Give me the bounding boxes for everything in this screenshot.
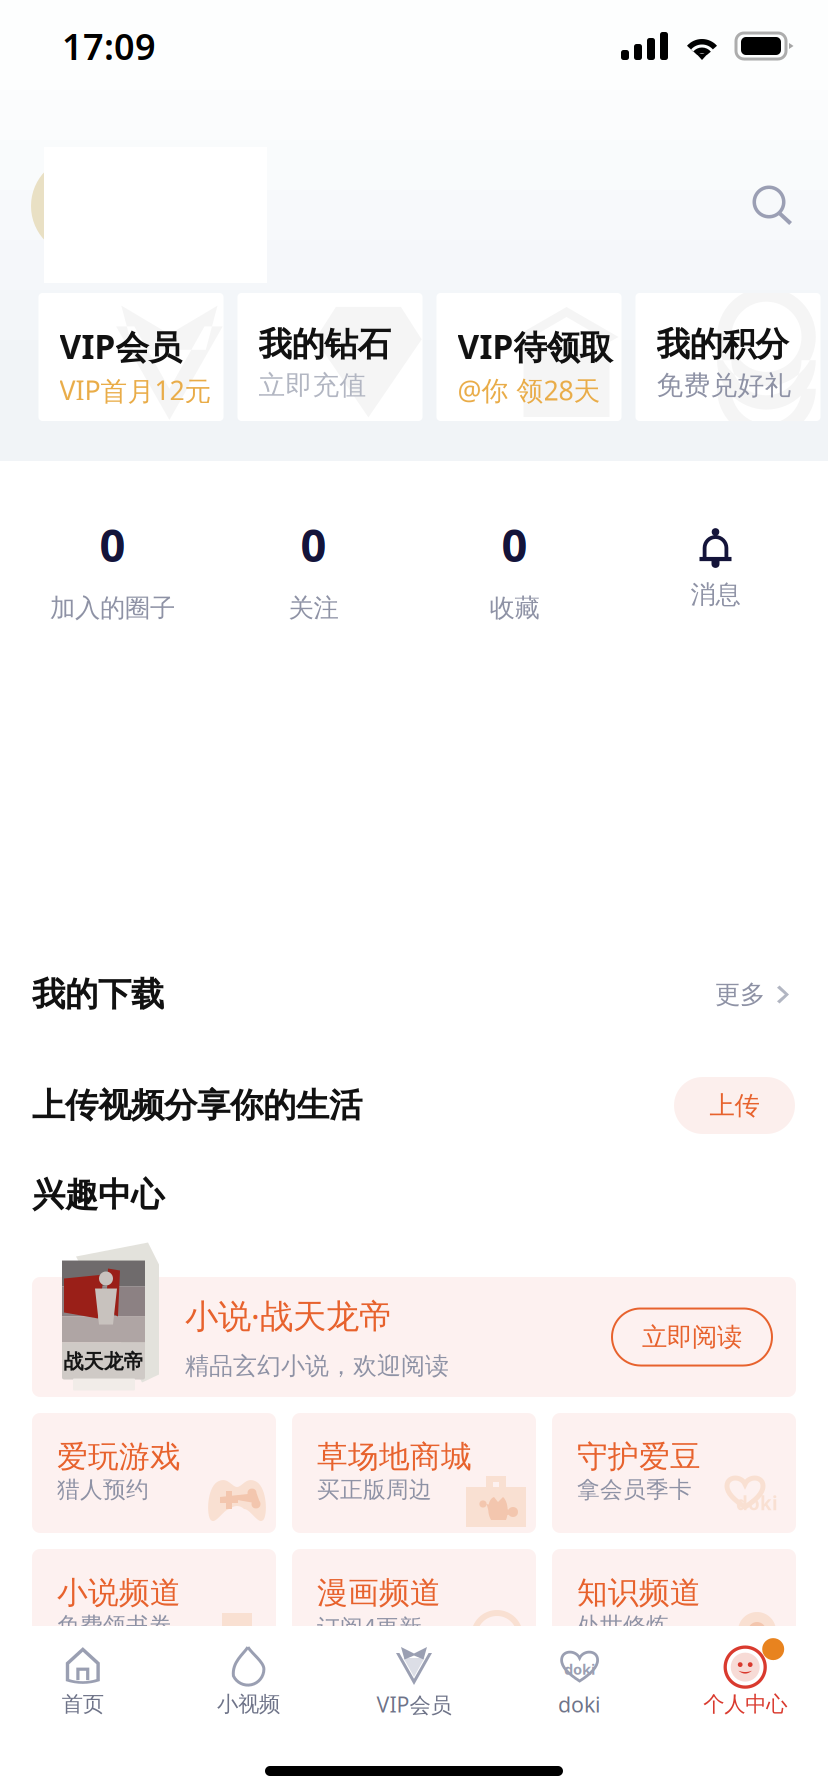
- button[interactable]: VIP会员: [331, 1642, 497, 1718]
- staticText: doki: [564, 1659, 595, 1679]
- staticText: 0: [501, 514, 527, 574]
- button[interactable]: 搜索: [751, 184, 795, 228]
- button[interactable]: VIP会员: [38, 293, 223, 421]
- staticText: VIP待领取: [457, 324, 612, 368]
- staticText: 0: [300, 514, 326, 574]
- button[interactable]: 我的积分: [635, 293, 820, 421]
- button[interactable]: 首页: [0, 1643, 166, 1717]
- staticText: 加入的圈子: [50, 592, 175, 624]
- staticText: 上传视频分享你的生活: [32, 1085, 362, 1126]
- staticText: 免费领书券: [57, 1612, 172, 1639]
- staticText: 消息: [690, 579, 740, 610]
- button[interactable]: 知识频道: [552, 1549, 796, 1669]
- staticText: 上传: [709, 1090, 759, 1121]
- staticText: VIP首月12元: [59, 372, 211, 408]
- staticText: 买正版周边: [317, 1476, 432, 1503]
- button[interactable]: doki: [497, 1642, 662, 1718]
- staticText: 我的钻石: [258, 324, 390, 365]
- staticText: 首页: [62, 1691, 104, 1717]
- staticText: 订阅4更新: [317, 1612, 422, 1642]
- staticText: 我的下载: [32, 974, 164, 1015]
- button[interactable]: 消息: [615, 528, 816, 610]
- button[interactable]: VIP待领取: [436, 293, 621, 421]
- staticText: 爱玩游戏: [57, 1438, 181, 1476]
- button[interactable]: 0: [414, 514, 615, 624]
- staticText: doki: [736, 1491, 778, 1515]
- button[interactable]: 爱玩游戏: [32, 1413, 276, 1533]
- staticText: 小视频: [217, 1691, 280, 1717]
- staticText: 17:09: [62, 22, 156, 70]
- staticText: 收藏: [489, 592, 539, 624]
- button[interactable]: 草场地商城: [292, 1413, 536, 1533]
- staticText: 漫画频道: [317, 1574, 441, 1612]
- staticText: 处世修炼: [577, 1612, 669, 1639]
- staticText: 免费兑好礼: [656, 369, 791, 402]
- staticText: VIP会员: [59, 324, 181, 368]
- button[interactable]: 个人中心: [662, 1643, 828, 1717]
- staticText: 个人中心: [703, 1691, 787, 1717]
- staticText: 知识频道: [577, 1574, 701, 1612]
- staticText: 小说·战天龙帝: [185, 1293, 392, 1337]
- button[interactable]: 小说频道: [32, 1549, 276, 1669]
- staticText: doki: [558, 1690, 601, 1718]
- staticText: 拿会员季卡: [577, 1476, 692, 1503]
- button[interactable]: 0: [12, 514, 213, 624]
- staticText: 小说频道: [57, 1574, 181, 1612]
- button[interactable]: 漫画频道: [292, 1549, 536, 1669]
- staticText: 我的积分: [656, 324, 788, 365]
- staticText: 草场地商城: [317, 1438, 472, 1476]
- button[interactable]: 上传: [674, 1077, 795, 1134]
- button[interactable]: 我的下载: [0, 941, 828, 1048]
- staticText: VIP会员: [376, 1690, 451, 1718]
- staticText: 更多: [715, 979, 765, 1010]
- staticText: 猎人预约: [57, 1476, 149, 1503]
- staticText: 兴趣中心: [32, 1174, 164, 1215]
- button[interactable]: 小视频: [166, 1643, 331, 1717]
- button[interactable]: 战天龙帝: [0, 1277, 828, 1397]
- button[interactable]: doki: [552, 1413, 796, 1533]
- staticText: 关注: [288, 592, 338, 624]
- staticText: 守护爱豆: [577, 1438, 701, 1476]
- button[interactable]: 我的钻石: [237, 293, 422, 421]
- staticText: 立即阅读: [642, 1321, 742, 1352]
- staticText: 精品玄幻小说，欢迎阅读: [185, 1351, 449, 1381]
- staticText: @你 领28天: [457, 372, 600, 408]
- staticText: 0: [99, 514, 125, 574]
- button[interactable]: 0: [213, 514, 414, 624]
- staticText: 立即充值: [258, 369, 366, 402]
- staticText: 战天龙帝: [63, 1349, 143, 1374]
